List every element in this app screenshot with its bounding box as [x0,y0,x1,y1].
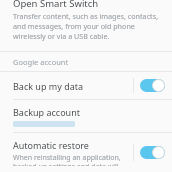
staticText: Back up my data [13,80,133,92]
staticText: Automatic restore [13,139,89,151]
button[interactable]: Backup account [0,100,172,132]
button[interactable]: Automatic restore [140,146,165,159]
staticText: Backup account [13,106,80,118]
staticText: Google account [13,57,69,67]
staticText: Transfer content, such as images, contac… [13,11,160,41]
staticText: When reinstalling an application, backed… [13,153,128,166]
button[interactable]: Open Smart Switch [0,0,172,51]
button[interactable]: Automatic restore [0,133,172,172]
staticText: Open Smart Switch [13,0,99,10]
button[interactable]: Back up my data [140,79,165,92]
button[interactable]: Back up my data [0,72,172,99]
